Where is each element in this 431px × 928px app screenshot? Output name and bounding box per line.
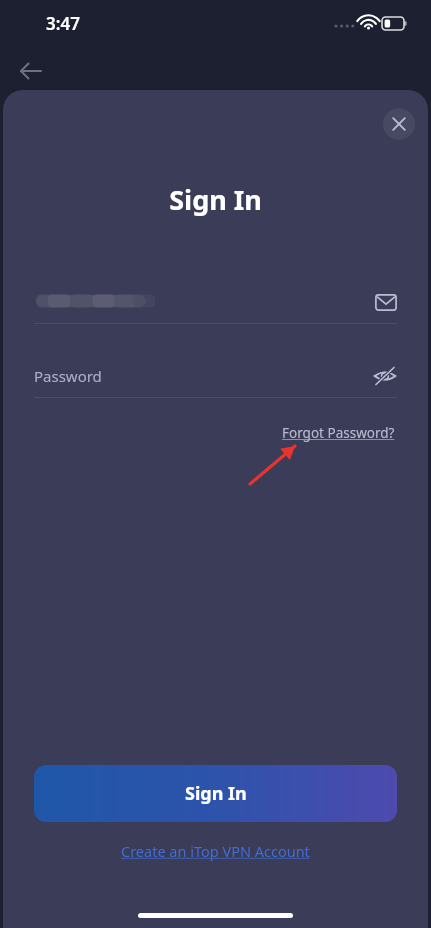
button[interactable]: Close [383, 108, 415, 140]
button[interactable] [34, 280, 397, 324]
button[interactable]: Password [34, 354, 397, 398]
staticText: Create an iTop VPN Account [121, 841, 310, 861]
button[interactable]: Forgot Password? [280, 420, 397, 446]
button[interactable]: Create an iTop VPN Account [115, 836, 316, 866]
staticText: 3:47 [46, 12, 80, 35]
staticText: Password [34, 366, 102, 386]
staticText: Forgot Password? [282, 424, 395, 442]
staticText: Sign In [185, 781, 247, 806]
button[interactable]: Back [12, 52, 50, 90]
staticText: Sign In [3, 181, 428, 218]
button[interactable]: Sign In [34, 765, 397, 822]
